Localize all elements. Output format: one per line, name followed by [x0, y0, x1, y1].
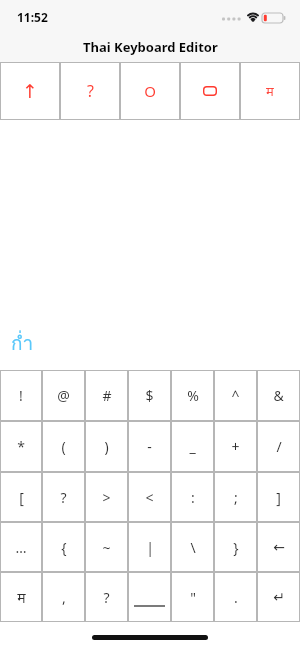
- button[interactable]: }: [214, 522, 257, 572]
- staticText: ,: [62, 588, 66, 607]
- staticText: [: [19, 488, 24, 507]
- button[interactable]: ↑: [0, 62, 60, 120]
- staticText: 11:52: [17, 9, 48, 25]
- button[interactable]: #: [85, 370, 128, 421]
- button[interactable]: [180, 62, 240, 120]
- staticText: ?: [103, 588, 110, 607]
- button[interactable]: |: [128, 522, 171, 572]
- button[interactable]: ]: [257, 472, 300, 522]
- staticText: #: [102, 386, 112, 405]
- staticText: ]: [276, 488, 281, 507]
- staticText: …: [15, 538, 27, 557]
- staticText: ~: [102, 538, 111, 557]
- button[interactable]: .: [214, 572, 257, 622]
- button[interactable]: {: [42, 522, 85, 572]
- staticText: O: [144, 81, 156, 101]
- button[interactable]: ↵: [257, 572, 300, 622]
- button[interactable]: ": [171, 572, 214, 622]
- staticText: {: [61, 538, 67, 557]
- staticText: /: [276, 437, 282, 456]
- button[interactable]: <: [128, 472, 171, 522]
- button[interactable]: /: [257, 421, 300, 472]
- button[interactable]: ?: [42, 472, 85, 522]
- staticText: ;: [234, 488, 238, 507]
- staticText: >: [102, 488, 111, 507]
- staticText: \: [190, 538, 196, 557]
- staticText: ↵: [273, 589, 285, 605]
- button[interactable]: \: [171, 522, 214, 572]
- button[interactable]: &: [257, 370, 300, 421]
- staticText: :: [191, 488, 195, 507]
- button[interactable]: म: [240, 62, 300, 120]
- staticText: .: [234, 588, 238, 607]
- staticText: ": [190, 588, 196, 607]
- button[interactable]: _: [171, 421, 214, 472]
- staticText: <: [145, 488, 154, 507]
- button[interactable]: !: [0, 370, 42, 421]
- staticText: ก่ำ: [11, 328, 34, 358]
- button[interactable]: +: [214, 421, 257, 472]
- button[interactable]: :: [171, 472, 214, 522]
- button[interactable]: >: [85, 472, 128, 522]
- staticText: *: [17, 437, 25, 456]
- staticText: ^: [231, 386, 240, 405]
- button[interactable]: @: [42, 370, 85, 421]
- button[interactable]: ): [85, 421, 128, 472]
- button[interactable]: ;: [214, 472, 257, 522]
- button[interactable]: [128, 572, 171, 622]
- staticText: ↑: [22, 80, 38, 102]
- staticText: -: [147, 437, 152, 456]
- staticText: |: [146, 538, 154, 557]
- button[interactable]: O: [120, 62, 180, 120]
- staticText: Thai Keyboard Editor: [83, 38, 218, 56]
- staticText: _: [189, 437, 196, 456]
- button[interactable]: ^: [214, 370, 257, 421]
- button[interactable]: …: [0, 522, 42, 572]
- button[interactable]: $: [128, 370, 171, 421]
- staticText: %: [187, 386, 199, 405]
- staticText: @: [57, 386, 70, 405]
- button[interactable]: ?: [85, 572, 128, 622]
- button[interactable]: ←: [257, 522, 300, 572]
- staticText: (: [61, 437, 66, 456]
- button[interactable]: *: [0, 421, 42, 472]
- button[interactable]: -: [128, 421, 171, 472]
- staticText: &: [273, 386, 284, 405]
- staticText: !: [19, 386, 23, 405]
- button[interactable]: %: [171, 370, 214, 421]
- button[interactable]: ,: [42, 572, 85, 622]
- staticText: म: [266, 82, 274, 100]
- button[interactable]: [: [0, 472, 42, 522]
- staticText: ): [104, 437, 109, 456]
- button[interactable]: ~: [85, 522, 128, 572]
- staticText: ←: [273, 539, 285, 555]
- staticText: ?: [87, 80, 94, 102]
- staticText: म: [17, 588, 26, 607]
- button[interactable]: ?: [60, 62, 120, 120]
- staticText: ?: [60, 488, 67, 507]
- staticText: $: [145, 386, 154, 405]
- staticText: +: [231, 437, 240, 456]
- button[interactable]: (: [42, 421, 85, 472]
- button[interactable]: म: [0, 572, 42, 622]
- staticText: }: [233, 538, 239, 557]
